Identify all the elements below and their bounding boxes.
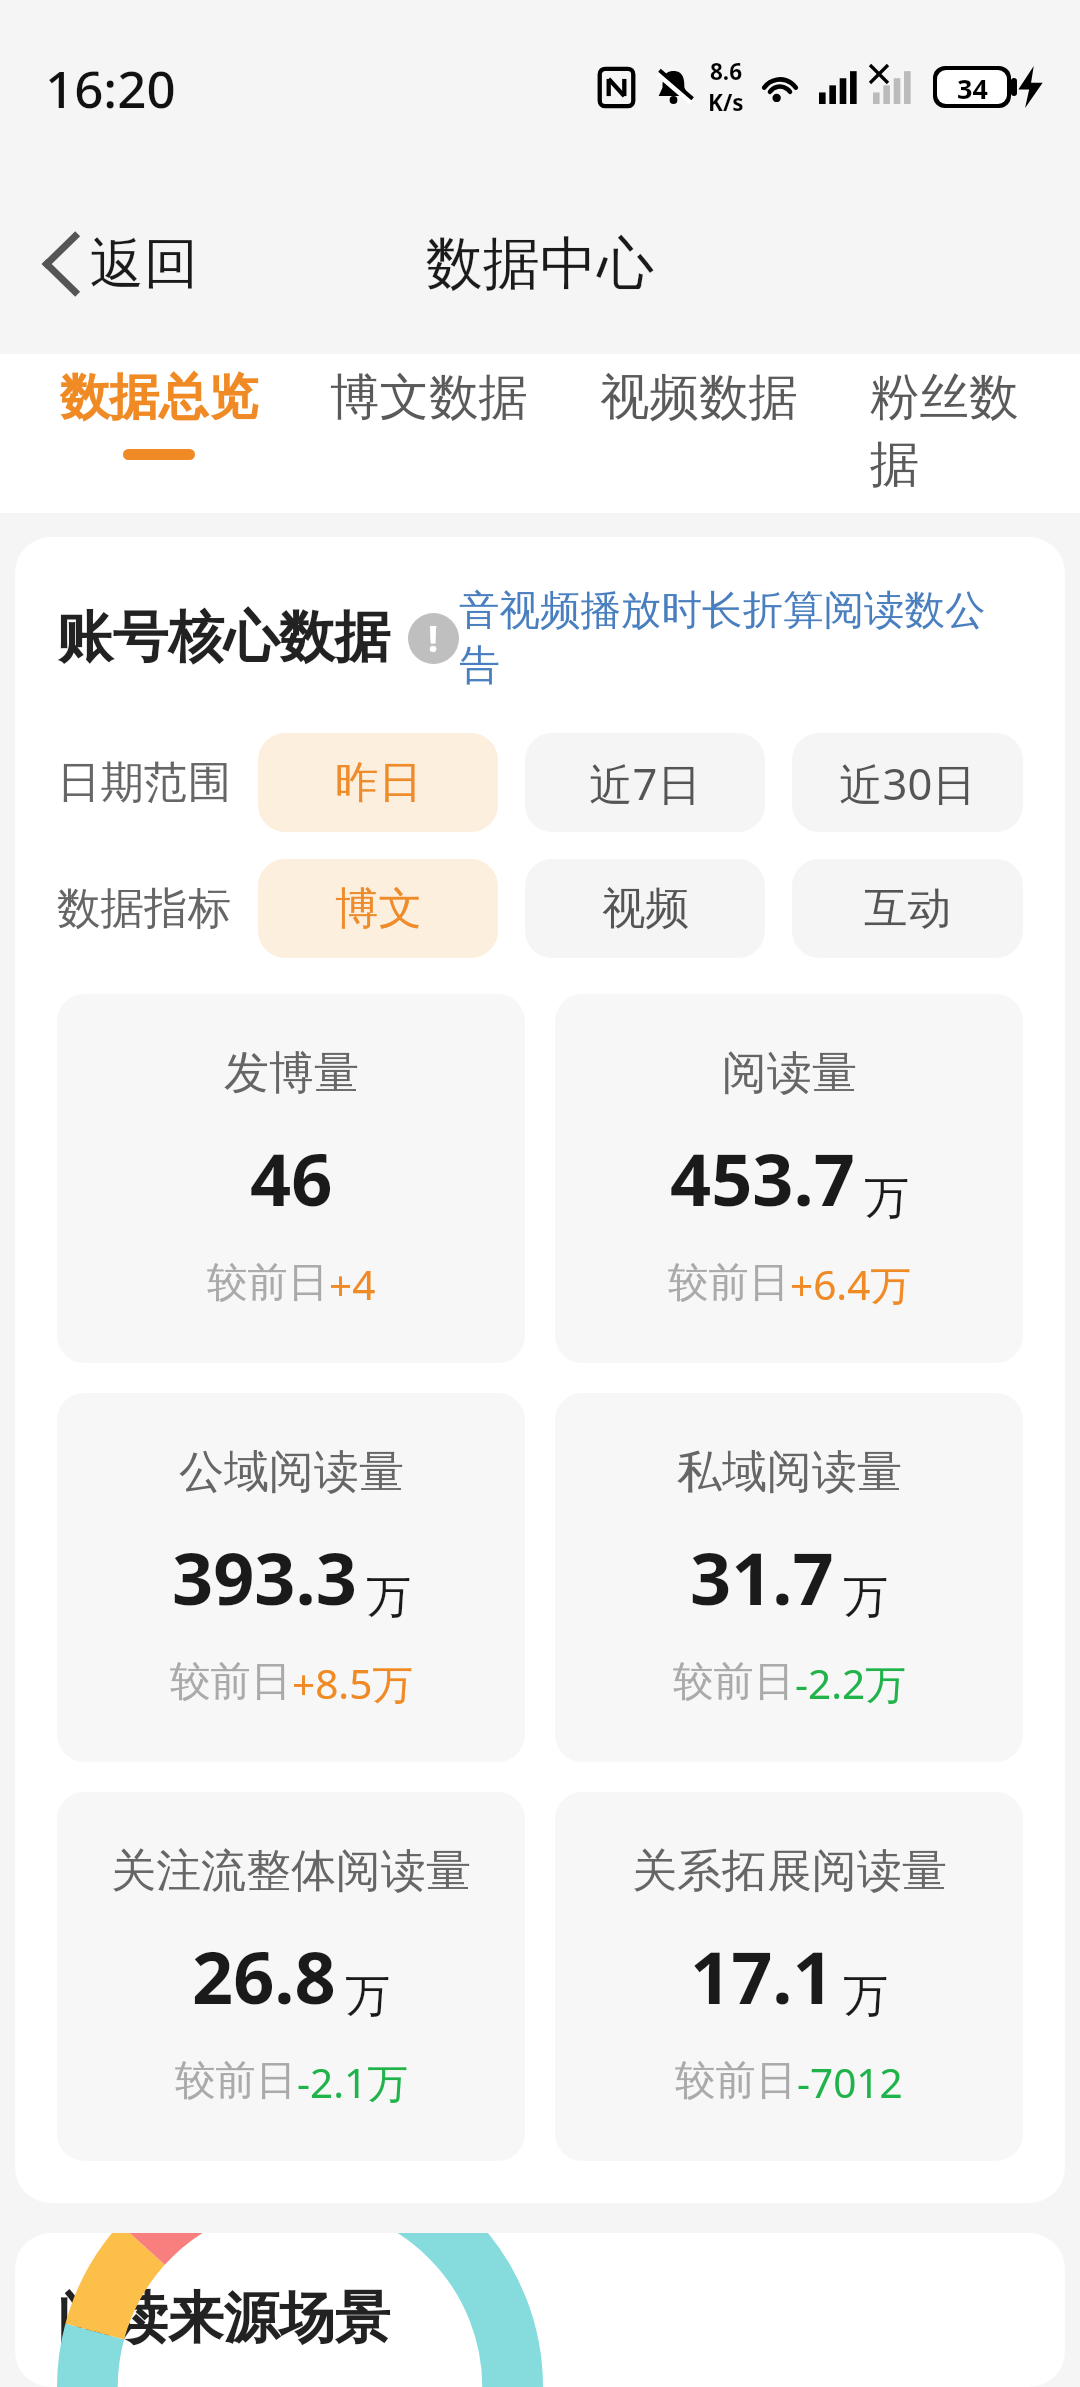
button[interactable]: 视频	[525, 859, 765, 958]
staticText: 万	[843, 1968, 888, 2025]
staticText: 阅读量	[722, 1045, 857, 1102]
staticText: 发博量	[224, 1045, 359, 1102]
button[interactable]: 说明	[408, 613, 459, 664]
staticText: 较前日	[675, 2055, 797, 2106]
button[interactable]: 关系拓展阅读量	[555, 1792, 1023, 2161]
staticText: 近30日	[839, 753, 976, 812]
staticText: 返回	[90, 230, 198, 298]
button[interactable]: 私域阅读量	[555, 1393, 1023, 1762]
button[interactable]: 视频数据	[564, 354, 834, 513]
staticText: 博文	[335, 881, 422, 936]
button[interactable]: 博文	[258, 859, 498, 958]
button[interactable]: 粉丝数据	[834, 354, 1080, 513]
staticText: 关系拓展阅读量	[632, 1843, 947, 1900]
staticText: 万	[864, 1170, 909, 1227]
staticText: 视频数据	[600, 366, 798, 428]
button[interactable]: 阅读量	[555, 994, 1023, 1363]
staticText: 万	[843, 1569, 888, 1626]
staticText: -2.2万	[795, 1656, 906, 1711]
staticText: 博文数据	[330, 366, 528, 428]
staticText: 阅读来源场景	[57, 2284, 390, 2354]
staticText: 昨日	[335, 755, 422, 810]
staticText: 453.7	[670, 1129, 855, 1227]
button[interactable]: 音视频播放时长折算阅读数公告	[459, 585, 1023, 691]
staticText: 46	[250, 1129, 333, 1227]
staticText: 万	[366, 1569, 411, 1626]
staticText: 万	[345, 1968, 390, 2025]
button[interactable]: 互动	[792, 859, 1023, 958]
button[interactable]: 博文数据	[294, 354, 564, 513]
staticText: 日期范围	[57, 755, 231, 810]
staticText: 视频	[602, 881, 689, 936]
staticText: +8.5万	[292, 1656, 413, 1711]
staticText: 34	[957, 70, 988, 104]
staticText: 数据中心	[426, 228, 654, 300]
staticText: 8.6	[710, 56, 743, 87]
staticText: 较前日	[673, 1656, 795, 1707]
button[interactable]: 昨日	[258, 733, 498, 832]
button[interactable]: 近30日	[792, 733, 1023, 832]
staticText: 较前日	[175, 2055, 297, 2106]
staticText: 近7日	[589, 753, 701, 812]
staticText: 账号核心数据	[57, 603, 390, 673]
staticText: !	[428, 614, 439, 663]
staticText: 粉丝数据	[870, 366, 1044, 496]
button[interactable]: 数据总览	[24, 354, 294, 513]
staticText: 数据指标	[57, 881, 231, 936]
staticText: 私域阅读量	[677, 1444, 902, 1501]
staticText: 互动	[864, 881, 951, 936]
button[interactable]: 发博量	[57, 994, 525, 1363]
staticText: 较前日	[668, 1257, 790, 1308]
button[interactable]: 公域阅读量	[57, 1393, 525, 1762]
staticText: 17.1	[690, 1927, 834, 2025]
staticText: 较前日	[170, 1656, 292, 1707]
button[interactable]: 关注流整体阅读量	[57, 1792, 525, 2161]
staticText: 16:20	[45, 53, 176, 122]
button[interactable]: 返回	[0, 206, 240, 322]
staticText: 关注流整体阅读量	[111, 1843, 471, 1900]
staticText: K/s	[708, 87, 744, 118]
staticText: -7012	[797, 2055, 903, 2110]
staticText: -2.1万	[297, 2055, 408, 2110]
staticText: +4	[329, 1257, 376, 1312]
staticText: 26.8	[192, 1927, 336, 2025]
staticText: 公域阅读量	[179, 1444, 404, 1501]
staticText: +6.4万	[790, 1257, 911, 1312]
button[interactable]: 近7日	[525, 733, 765, 832]
staticText: 393.3	[172, 1528, 357, 1626]
staticText: 31.7	[690, 1528, 834, 1626]
staticText: 较前日	[207, 1257, 329, 1308]
staticText: 数据总览	[60, 366, 258, 428]
